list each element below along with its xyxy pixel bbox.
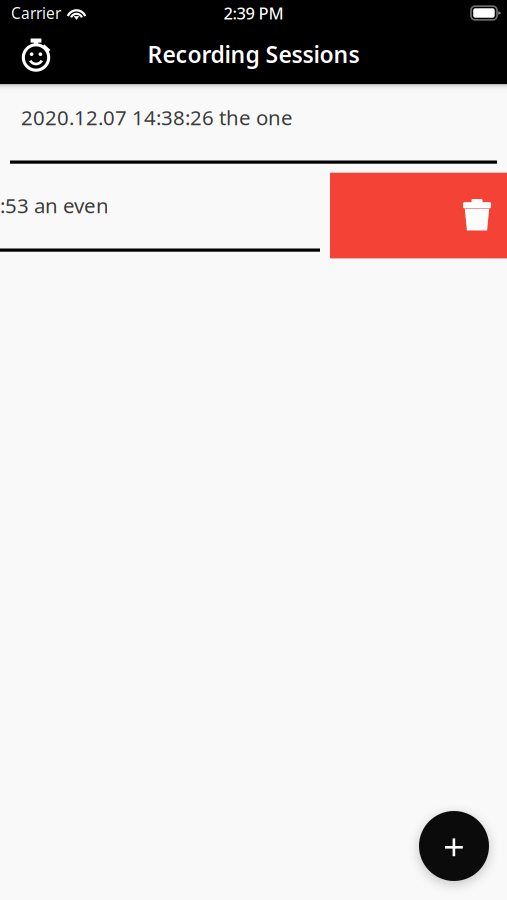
button[interactable]: Add session	[419, 811, 489, 881]
button[interactable]: Delete	[330, 173, 507, 258]
staticText: 2020.12.07 14:35:53 an even	[0, 192, 109, 219]
staticText: 2:39 PM	[223, 2, 283, 24]
button[interactable]: 2020.12.07 14:35:53 an even	[0, 172, 507, 260]
staticText: Carrier	[11, 3, 61, 23]
staticText: 2020.12.07 14:38:26 the one	[21, 104, 293, 131]
button[interactable]: Sessions	[0, 33, 62, 77]
staticText: Recording Sessions	[147, 39, 359, 69]
button[interactable]: 2020.12.07 14:38:26 the one	[0, 84, 507, 172]
